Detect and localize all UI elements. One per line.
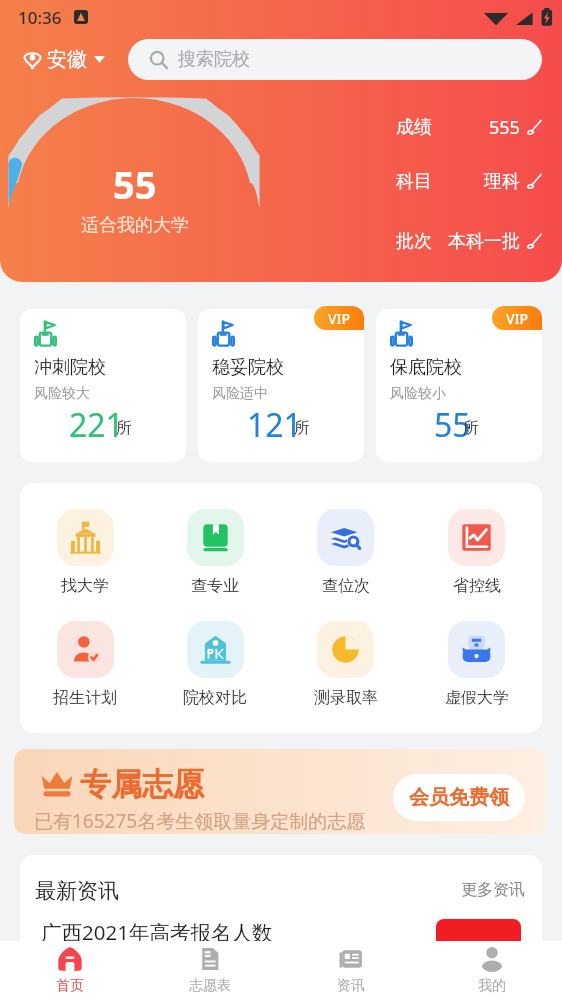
button[interactable]: 资讯 xyxy=(280,946,421,995)
staticText: 查位次 xyxy=(322,576,370,596)
button[interactable]: 搜索院校 xyxy=(128,39,542,80)
button[interactable]: 首页 xyxy=(0,946,140,995)
staticText: 成绩 xyxy=(396,116,432,139)
staticText: 冲刺院校 xyxy=(34,356,106,379)
staticText: 555 xyxy=(489,115,520,140)
button[interactable]: 院校对比 xyxy=(150,621,280,708)
staticText: 121 xyxy=(247,403,302,437)
staticText: 院校对比 xyxy=(183,688,247,708)
staticText: 风险较小 xyxy=(390,385,446,403)
button[interactable]: 冲刺院校 xyxy=(20,309,186,462)
button[interactable]: 我的 xyxy=(421,946,562,995)
staticText: 我的 xyxy=(478,977,506,995)
button[interactable]: 稳妥院校 xyxy=(198,309,364,462)
staticText: 最新资讯 xyxy=(35,878,119,904)
button[interactable]: 更多资讯 xyxy=(461,880,525,900)
staticText: 所 xyxy=(463,418,479,438)
button[interactable]: 批次 xyxy=(396,227,542,255)
staticText: 安徽 xyxy=(47,47,87,72)
staticText: 首页 xyxy=(56,977,84,995)
button[interactable]: 虚假大学 xyxy=(411,621,542,708)
staticText: 科目 xyxy=(396,170,432,193)
button[interactable]: 找大学 xyxy=(20,509,150,596)
staticText: 广西2021年高考报名人数 xyxy=(41,918,273,946)
staticText: 测录取率 xyxy=(314,688,378,708)
staticText: 虚假大学 xyxy=(445,688,509,708)
staticText: 适合我的大学 xyxy=(81,214,189,237)
staticText: 搜索院校 xyxy=(178,48,250,71)
button[interactable]: 成绩 xyxy=(396,113,542,141)
staticText: 省控线 xyxy=(453,576,501,596)
staticText: 专属志愿 xyxy=(80,765,204,804)
staticText: 已有165275名考生领取量身定制的志愿 xyxy=(34,808,366,834)
staticText: 55 xyxy=(434,403,471,437)
staticText: 批次 xyxy=(396,230,432,253)
staticText: 招生计划 xyxy=(53,688,117,708)
other: 编辑 xyxy=(526,173,542,189)
staticText: VIP xyxy=(506,309,529,328)
staticText: 资讯 xyxy=(337,977,365,995)
staticText: 保底院校 xyxy=(390,356,462,379)
staticText: VIP xyxy=(328,309,351,328)
staticText: 理科 xyxy=(484,170,520,193)
staticText: 所 xyxy=(116,418,132,438)
button[interactable]: 查专业 xyxy=(150,509,280,596)
button[interactable]: 志愿表 xyxy=(140,946,280,995)
other: 编辑 xyxy=(526,119,542,135)
button[interactable]: VIP xyxy=(492,306,542,330)
button[interactable]: 会员免费领 xyxy=(393,774,525,821)
staticText: 风险适中 xyxy=(212,385,268,403)
button[interactable]: 科目 xyxy=(396,167,542,195)
staticText: 本科一批 xyxy=(448,230,520,253)
button[interactable]: 安徽 xyxy=(20,41,109,78)
staticText: 找大学 xyxy=(61,576,109,596)
staticText: 221 xyxy=(69,403,124,437)
staticText: 55 xyxy=(113,158,157,210)
button[interactable]: 招生计划 xyxy=(20,621,150,708)
button[interactable]: 省控线 xyxy=(411,509,542,596)
other: 编辑 xyxy=(526,233,542,249)
button[interactable]: VIP xyxy=(314,306,364,330)
staticText: 稳妥院校 xyxy=(212,356,284,379)
staticText: 所 xyxy=(294,418,310,438)
staticText: 会员免费领 xyxy=(409,785,509,810)
button[interactable]: 查位次 xyxy=(280,509,411,596)
staticText: 风险较大 xyxy=(34,385,90,403)
button[interactable]: 保底院校 xyxy=(376,309,542,462)
button[interactable]: 测录取率 xyxy=(280,621,411,708)
staticText: 志愿表 xyxy=(189,977,231,995)
staticText: 查专业 xyxy=(191,576,239,596)
staticText: 10:36 xyxy=(18,6,62,29)
button[interactable]: 专属志愿 xyxy=(14,749,546,834)
